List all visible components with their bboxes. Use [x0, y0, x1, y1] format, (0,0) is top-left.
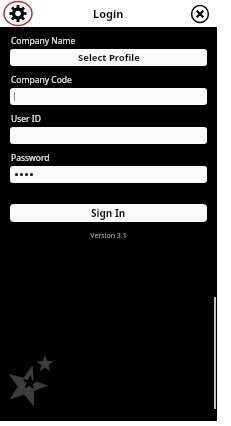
staticText: Sign In	[91, 206, 126, 220]
staticText: Password	[11, 152, 50, 164]
staticText: Company Name	[11, 35, 76, 47]
button[interactable]	[10, 166, 207, 183]
staticText: Login	[93, 6, 124, 21]
staticText: Version 3.1	[0, 231, 217, 241]
staticText: Select Profile	[78, 51, 140, 64]
button[interactable]: Settings	[3, 0, 33, 27]
button[interactable]	[10, 127, 207, 144]
button[interactable]: Sign In	[10, 204, 207, 222]
button[interactable]: Close	[188, 2, 212, 26]
button[interactable]	[10, 88, 207, 105]
staticText: Company Code	[11, 74, 72, 86]
button[interactable]: Select Profile	[10, 49, 207, 66]
staticText: User ID	[11, 113, 41, 125]
